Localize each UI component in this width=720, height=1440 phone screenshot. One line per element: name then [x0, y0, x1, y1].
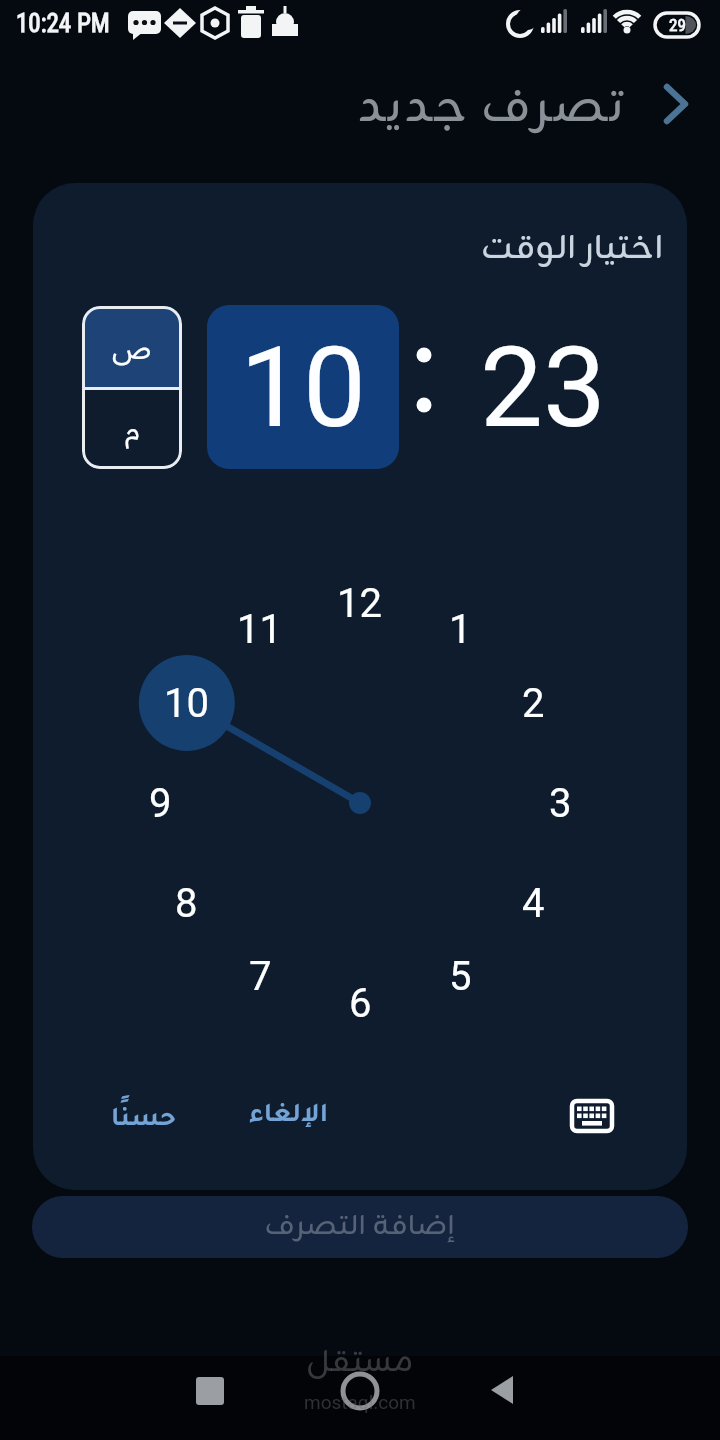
button[interactable]: 23: [443, 305, 643, 469]
button[interactable]: الإلغاء: [218, 1085, 358, 1149]
staticText: تصرف جديد: [357, 71, 626, 143]
staticText: 6: [349, 980, 372, 1027]
staticText: 9: [149, 780, 172, 827]
button[interactable]: م: [82, 390, 182, 469]
staticText: 10: [240, 322, 366, 453]
staticText: الإلغاء: [249, 1104, 328, 1131]
staticText: 10: [164, 680, 209, 727]
staticText: مستقل: [306, 1338, 414, 1382]
staticText: 29: [669, 15, 686, 35]
button[interactable]: ص: [82, 306, 182, 387]
button[interactable]: [566, 1092, 618, 1140]
staticText: اختيار الوقت: [481, 222, 664, 277]
button[interactable]: إضافة التصرف: [32, 1196, 688, 1258]
button[interactable]: 8: [146, 873, 226, 933]
staticText: 3: [549, 780, 572, 827]
staticText: 2: [522, 680, 545, 727]
staticText: 4: [522, 880, 545, 927]
button[interactable]: 2: [493, 673, 573, 733]
button[interactable]: 11: [219, 599, 299, 659]
button[interactable]: [338, 1369, 382, 1413]
button[interactable]: 10: [207, 305, 399, 469]
button[interactable]: [193, 1374, 227, 1408]
button[interactable]: 12: [319, 573, 399, 633]
staticText: 11: [237, 606, 282, 653]
staticText: mostaql.com: [304, 1391, 416, 1413]
staticText: 10:24 PM: [16, 9, 110, 38]
staticText: 7: [249, 953, 272, 1000]
button[interactable]: 6: [320, 973, 400, 1033]
button[interactable]: 4: [493, 873, 573, 933]
staticText: حسنًا: [111, 1108, 176, 1135]
staticText: م: [125, 409, 140, 450]
staticText: 5: [449, 953, 472, 1000]
button[interactable]: 5: [420, 946, 500, 1006]
staticText: 1: [449, 606, 472, 653]
button[interactable]: 1: [420, 599, 500, 659]
staticText: ص: [112, 326, 152, 367]
button[interactable]: 10: [146, 673, 226, 733]
button[interactable]: 7: [220, 946, 300, 1006]
staticText: 23: [480, 322, 606, 453]
button[interactable]: حسنًا: [78, 1089, 208, 1153]
staticText: 8: [175, 880, 198, 927]
button[interactable]: 3: [520, 773, 600, 833]
staticText: إضافة التصرف: [265, 1204, 455, 1250]
button[interactable]: [487, 1374, 521, 1408]
button[interactable]: [655, 80, 699, 128]
button[interactable]: 9: [120, 773, 200, 833]
staticText: 12: [337, 580, 382, 627]
